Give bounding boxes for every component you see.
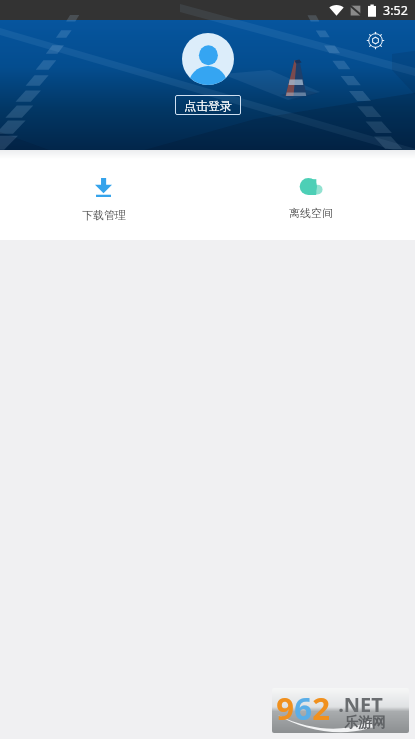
staticText: 离线空间 <box>289 206 333 220</box>
button[interactable]: Avatar <box>182 33 234 85</box>
button[interactable]: 点击登录 <box>175 95 241 115</box>
staticText: 6 <box>294 688 312 729</box>
button[interactable]: 离线空间 <box>207 150 415 220</box>
button[interactable]: 下载管理 <box>0 150 207 222</box>
staticText: 2 <box>312 688 330 729</box>
staticText: 9 <box>276 688 294 729</box>
staticText: .NET <box>338 691 383 718</box>
staticText: 3:52 <box>383 2 408 19</box>
staticText: 下载管理 <box>82 208 126 222</box>
staticText: 点击登录 <box>184 98 232 113</box>
button[interactable]: Settings <box>361 26 389 54</box>
staticText: 乐游网 <box>344 714 386 732</box>
